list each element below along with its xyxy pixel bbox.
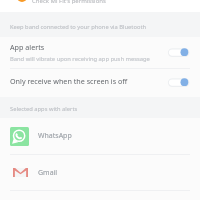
button[interactable]: WhatsApp <box>0 118 200 154</box>
staticText: Only receive when the screen is off <box>10 76 178 86</box>
staticText: Gmail <box>38 168 58 178</box>
staticText: Check Mi Fit's permissions <box>32 0 106 5</box>
staticText: WhatsApp <box>38 131 72 141</box>
button[interactable]: App alerts toggle <box>168 45 196 61</box>
staticText: Band will vibrate upon receiving app pus… <box>10 55 150 63</box>
button[interactable]: App alerts <box>0 37 200 68</box>
button[interactable]: Gmail <box>0 155 200 190</box>
button[interactable]: Check Mi Fit's permissions <box>0 0 200 12</box>
button[interactable]: Only receive when the screen is off <box>0 69 200 97</box>
staticText: Keep band connected to your phone via Bl… <box>10 23 147 31</box>
button[interactable]: Screen off only toggle <box>168 75 196 91</box>
staticText: App alerts <box>10 42 45 52</box>
staticText: Selected apps with alerts <box>10 105 78 113</box>
